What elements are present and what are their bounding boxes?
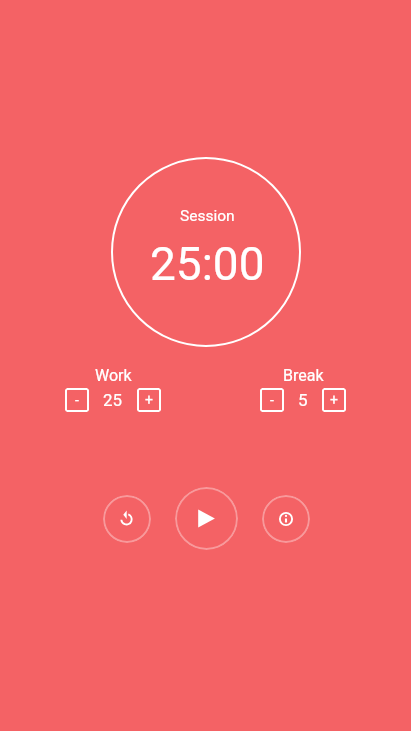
staticText: + bbox=[145, 392, 153, 408]
staticText: Session bbox=[180, 207, 235, 225]
staticText: - bbox=[75, 392, 79, 408]
button[interactable]: Increase Work length bbox=[137, 388, 161, 412]
staticText: 25 bbox=[103, 390, 123, 410]
staticText: 25:00 bbox=[150, 237, 265, 291]
button[interactable]: Decrease Work length bbox=[65, 388, 89, 412]
button[interactable]: Reset timer bbox=[103, 495, 151, 543]
button[interactable]: Decrease Break length bbox=[260, 388, 284, 412]
staticText: Break bbox=[283, 366, 324, 385]
button[interactable]: Info bbox=[262, 495, 310, 543]
staticText: + bbox=[330, 392, 338, 408]
button[interactable]: Start timer bbox=[175, 487, 238, 550]
staticText: 5 bbox=[298, 390, 308, 410]
button[interactable]: Increase Break length bbox=[322, 388, 346, 412]
staticText: - bbox=[270, 392, 274, 408]
staticText: Work bbox=[95, 366, 132, 385]
